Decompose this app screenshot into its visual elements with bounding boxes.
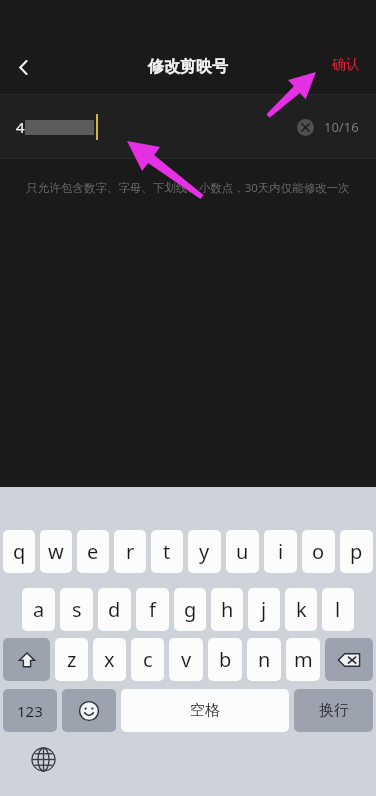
button[interactable]: c: [131, 638, 164, 681]
button[interactable]: Back: [2, 46, 44, 88]
button[interactable]: m: [286, 638, 320, 681]
button[interactable]: 空格: [121, 689, 289, 732]
button[interactable]: o: [302, 530, 335, 573]
staticText: e: [87, 538, 99, 565]
staticText: j: [261, 596, 267, 623]
staticText: 换行: [319, 701, 349, 720]
button[interactable]: j: [248, 588, 280, 631]
staticText: q: [13, 538, 26, 565]
button[interactable]: Switch keyboard language: [27, 743, 59, 775]
button[interactable]: Clear text: [289, 111, 321, 143]
button[interactable]: h: [211, 588, 243, 631]
button[interactable]: w: [40, 530, 72, 573]
button[interactable]: t: [151, 530, 183, 573]
button[interactable]: g: [174, 588, 206, 631]
button[interactable]: n: [247, 638, 281, 681]
button[interactable]: s: [60, 588, 93, 631]
staticText: 4: [16, 117, 25, 137]
staticText: v: [181, 646, 192, 673]
staticText: n: [258, 646, 271, 673]
button[interactable]: u: [226, 530, 259, 573]
staticText: u: [236, 538, 249, 565]
button[interactable]: l: [322, 588, 354, 631]
staticText: f: [149, 596, 156, 623]
button[interactable]: b: [208, 638, 242, 681]
staticText: 空格: [190, 701, 220, 720]
staticText: w: [48, 538, 64, 565]
button[interactable]: i: [264, 530, 297, 573]
button[interactable]: p: [340, 530, 373, 573]
staticText: 确认: [332, 56, 360, 74]
button[interactable]: k: [285, 588, 317, 631]
button[interactable]: 确认: [316, 50, 376, 80]
staticText: 10/16: [324, 118, 359, 136]
staticText: x: [104, 646, 115, 673]
staticText: b: [219, 646, 232, 673]
staticText: l: [335, 596, 341, 623]
button[interactable]: 换行: [294, 689, 373, 732]
button[interactable]: f: [136, 588, 169, 631]
staticText: a: [33, 596, 45, 623]
button[interactable]: d: [98, 588, 131, 631]
staticText: o: [312, 538, 325, 565]
staticText: g: [184, 596, 197, 623]
staticText: k: [296, 596, 307, 623]
button[interactable]: Shift: [3, 638, 50, 681]
staticText: i: [278, 538, 284, 565]
staticText: 修改剪映号: [148, 57, 228, 77]
button[interactable]: x: [93, 638, 126, 681]
staticText: c: [143, 646, 153, 673]
button[interactable]: y: [188, 530, 221, 573]
button[interactable]: z: [55, 638, 88, 681]
button[interactable]: Emoji: [62, 689, 116, 732]
button[interactable]: e: [77, 530, 109, 573]
button[interactable]: q: [3, 530, 35, 573]
button[interactable]: Backspace: [325, 638, 373, 681]
staticText: z: [67, 646, 77, 673]
button[interactable]: r: [114, 530, 146, 573]
staticText: y: [199, 538, 210, 565]
staticText: s: [72, 596, 82, 623]
button[interactable]: a: [22, 588, 55, 631]
button[interactable]: v: [169, 638, 203, 681]
staticText: 123: [17, 701, 43, 721]
staticText: h: [221, 596, 234, 623]
staticText: d: [108, 596, 121, 623]
staticText: m: [294, 646, 313, 673]
staticText: t: [163, 538, 171, 565]
staticText: p: [350, 538, 363, 565]
button[interactable]: 123: [3, 689, 57, 732]
staticText: r: [126, 538, 135, 565]
staticText: 只允许包含数字、字母、下划线、小数点，30天内仅能修改一次: [26, 180, 350, 196]
